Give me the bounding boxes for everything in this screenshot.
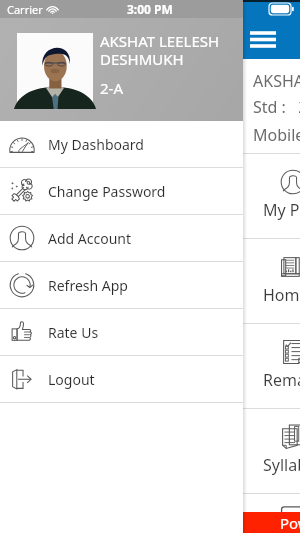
staticText: Change Password [48, 182, 166, 201]
staticText: Homework [263, 284, 300, 306]
button[interactable]: My Dashboard [0, 121, 243, 167]
staticText: Syllabus [263, 454, 300, 476]
staticText: 2-A [100, 78, 123, 98]
button[interactable]: Syllabus [0, 409, 300, 494]
button[interactable]: Remarks [0, 324, 300, 409]
button[interactable]: Refresh App [0, 262, 243, 308]
staticText: Remarks [263, 369, 300, 391]
button[interactable]: Fees [0, 494, 300, 533]
staticText: Mobile : 9876543210 [253, 124, 300, 146]
button[interactable]: Logout [0, 356, 243, 402]
button[interactable]: Rate Us [0, 309, 243, 355]
staticText: AKSHAT LEELESH DESHMUKH [253, 70, 300, 92]
button[interactable]: Powered by eSchool [0, 512, 300, 533]
staticText: AKSHAT LEELESH DESHMUKH [100, 31, 220, 70]
button[interactable]: Homework [0, 239, 300, 324]
staticText: My Dashboard [48, 135, 144, 154]
staticText: Std : 2-A [253, 96, 300, 118]
staticText: Rate Us [48, 323, 99, 342]
staticText: Logout [48, 370, 95, 389]
staticText: My Profile [263, 199, 300, 221]
staticText: Carrier [7, 2, 43, 17]
button[interactable]: My Profile [0, 154, 300, 239]
staticText: 3:00 PM [127, 1, 173, 17]
button[interactable]: Add Account [0, 215, 243, 261]
button[interactable]: Open navigation menu [250, 31, 276, 48]
staticText: Refresh App [48, 276, 128, 295]
staticText: Add Account [48, 229, 132, 248]
staticText: Powered by eSchool [280, 513, 300, 533]
button[interactable]: Change Password [0, 168, 243, 214]
